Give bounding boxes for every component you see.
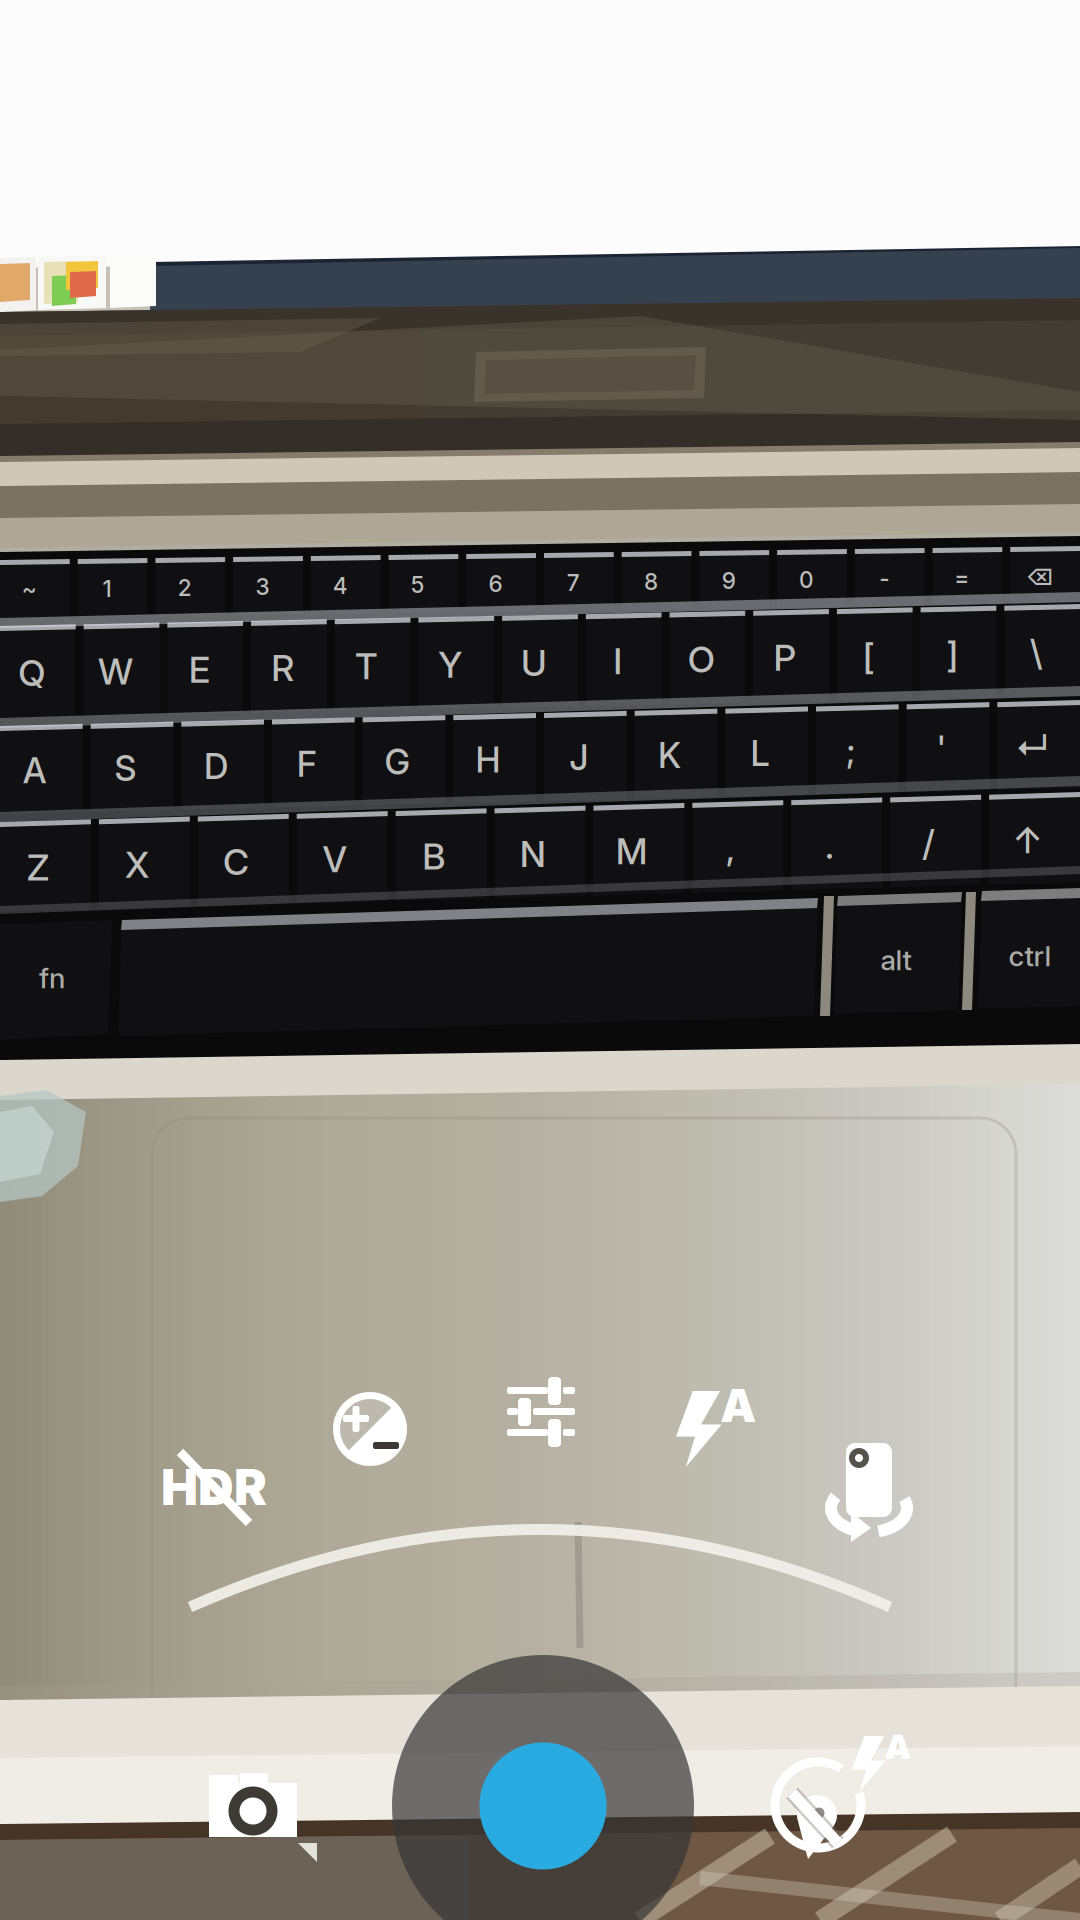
staticText: ↑: [1012, 818, 1042, 862]
staticText: /: [922, 821, 934, 865]
staticText: B: [422, 835, 445, 878]
staticText: H: [476, 739, 501, 781]
staticText: A: [885, 1726, 911, 1767]
staticText: A: [720, 1378, 756, 1433]
button[interactable]: HDR off: [0, 0, 1080, 1920]
staticText: ;: [846, 730, 855, 772]
staticText: E: [189, 648, 210, 691]
staticText: L: [751, 732, 770, 774]
staticText: ctrl: [1008, 939, 1051, 973]
staticText: HDR: [161, 1457, 267, 1517]
staticText: D: [204, 745, 228, 787]
staticText: I: [613, 639, 622, 683]
staticText: 2: [178, 574, 192, 601]
staticText: ⌫: [1026, 563, 1053, 590]
staticText: X: [125, 843, 149, 886]
staticText: N: [520, 832, 546, 876]
staticText: ]: [946, 633, 958, 676]
staticText: C: [223, 840, 249, 884]
button[interactable]: Settings: [0, 0, 1080, 1920]
staticText: 5: [411, 571, 425, 598]
staticText: [: [863, 634, 875, 678]
staticText: M: [616, 829, 648, 873]
staticText: V: [322, 837, 347, 881]
staticText: .: [825, 824, 834, 867]
staticText: -: [879, 565, 889, 592]
staticText: \: [1030, 631, 1042, 674]
staticText: 6: [489, 570, 503, 597]
button[interactable]: Shutter: [392, 1655, 694, 1920]
staticText: 7: [567, 569, 580, 596]
staticText: ,: [726, 827, 735, 870]
staticText: U: [521, 641, 547, 685]
staticText: W: [98, 649, 133, 693]
staticText: P: [773, 636, 796, 680]
staticText: O: [688, 638, 715, 681]
staticText: ': [936, 728, 946, 770]
button[interactable]: Location off, flash auto: [0, 0, 1080, 1920]
button[interactable]: Exposure compensation: [0, 0, 1080, 1920]
staticText: K: [658, 734, 681, 776]
staticText: 4: [333, 572, 348, 599]
staticText: 0: [799, 566, 814, 593]
staticText: A: [23, 750, 47, 792]
staticText: ↵: [1015, 726, 1049, 768]
button[interactable]: Camera mode: [0, 0, 1080, 1920]
staticText: Z: [27, 846, 50, 889]
staticText: 1: [102, 575, 111, 602]
staticText: alt: [880, 943, 911, 977]
button[interactable]: Flash auto: [0, 0, 1080, 1920]
staticText: R: [271, 646, 294, 690]
staticText: fn: [39, 961, 65, 995]
button[interactable]: Panorama: [0, 0, 1080, 1920]
staticText: Q: [18, 651, 45, 695]
staticText: 8: [644, 568, 658, 595]
staticText: T: [355, 644, 378, 688]
staticText: J: [569, 737, 588, 779]
staticText: G: [384, 741, 410, 783]
staticText: ~: [22, 576, 37, 603]
staticText: 9: [722, 567, 736, 594]
staticText: F: [297, 743, 317, 785]
staticText: 3: [255, 573, 269, 600]
staticText: =: [954, 564, 969, 591]
staticText: Y: [438, 643, 462, 686]
staticText: S: [114, 747, 136, 789]
